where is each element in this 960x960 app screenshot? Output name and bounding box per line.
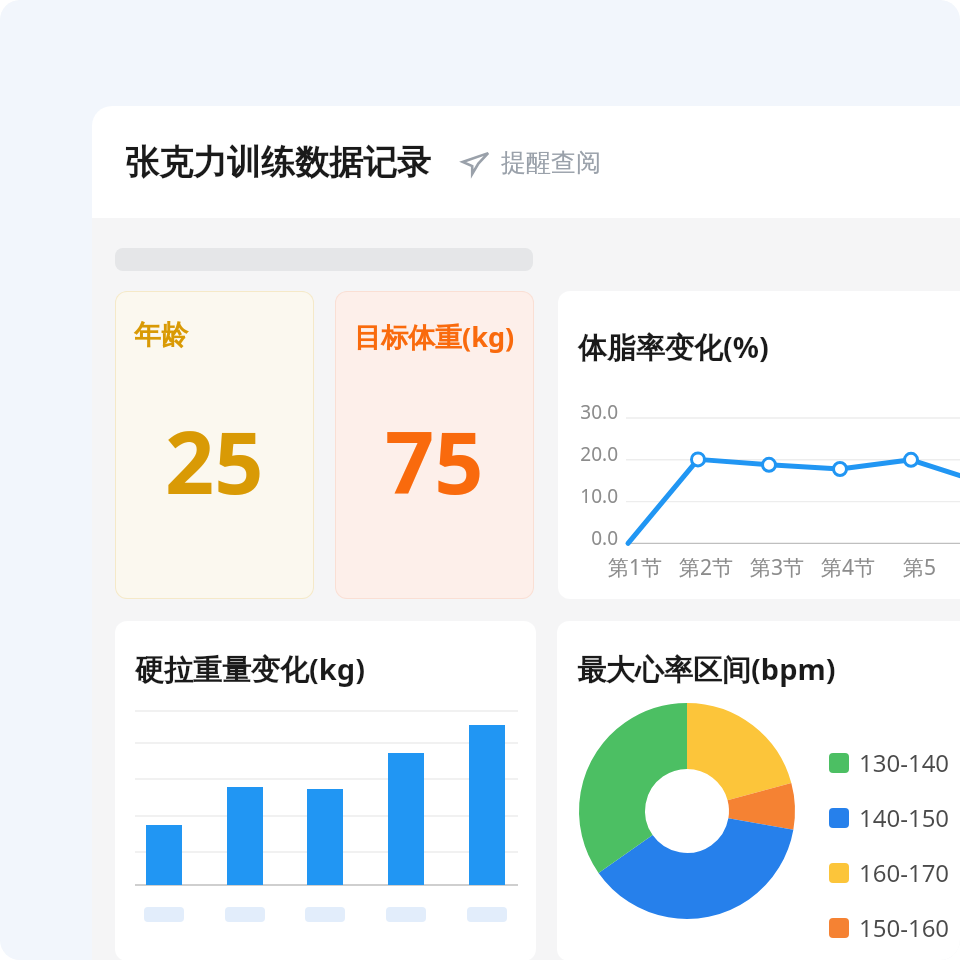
staticText: 30.0 xyxy=(580,399,618,425)
staticText: 体脂率变化(%) xyxy=(578,327,769,367)
button[interactable]: 160-170 xyxy=(829,856,950,889)
staticText: 75 xyxy=(385,402,484,519)
staticText: 第4节 xyxy=(821,553,876,582)
other: 提醒查阅 xyxy=(461,150,489,176)
staticText: 20.0 xyxy=(580,441,618,467)
staticText: 140-150 xyxy=(859,801,950,834)
button[interactable]: 年龄 xyxy=(116,292,313,598)
staticText: 第1节 xyxy=(608,553,663,582)
staticText: 年龄 xyxy=(134,318,188,352)
staticText: 第2节 xyxy=(679,553,734,582)
staticText: 硬拉重量变化(kg) xyxy=(135,649,365,689)
staticText: 最大心率区间(bpm) xyxy=(577,649,836,689)
staticText: 第3节 xyxy=(750,553,805,582)
button[interactable]: 最大心率区间(bpm) xyxy=(557,621,960,960)
staticText: 提醒查阅 xyxy=(501,147,601,178)
staticText: 目标体重(kg) xyxy=(354,318,515,355)
button[interactable]: 140-150 xyxy=(829,801,950,834)
staticText: 0.0 xyxy=(591,525,618,551)
staticText: 张克力训练数据记录 xyxy=(125,141,431,184)
staticText: 10.0 xyxy=(580,483,618,509)
staticText: 160-170 xyxy=(859,856,950,889)
button[interactable]: 130-140 xyxy=(829,746,950,779)
button[interactable]: 目标体重(kg) xyxy=(336,292,533,598)
button[interactable]: 150-160 xyxy=(829,911,950,944)
staticText: 130-140 xyxy=(859,746,950,779)
staticText: 第5 xyxy=(903,553,937,582)
button[interactable]: 提醒查阅 xyxy=(461,143,601,182)
button[interactable]: 体脂率变化(%) xyxy=(558,291,960,599)
button[interactable]: 硬拉重量变化(kg) xyxy=(115,621,536,960)
staticText: 150-160 xyxy=(859,911,950,944)
staticText: 25 xyxy=(165,402,264,519)
